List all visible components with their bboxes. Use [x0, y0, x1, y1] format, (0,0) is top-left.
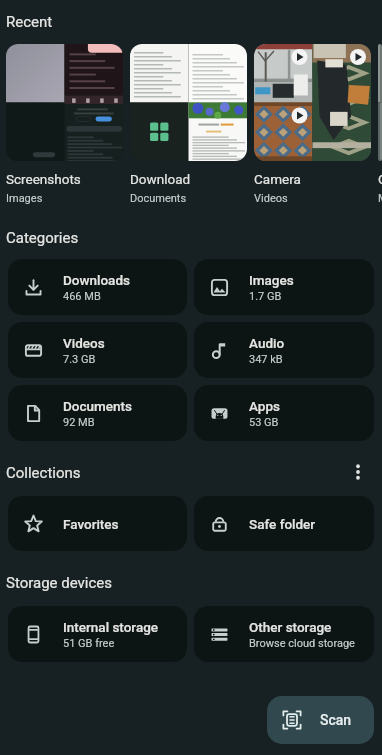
button[interactable]: Other — [378, 44, 382, 205]
staticText: Collections — [6, 464, 81, 482]
staticText: Apps — [249, 398, 280, 414]
button[interactable]: Camera — [254, 44, 371, 205]
staticText: Downloads — [63, 272, 130, 288]
staticText: Other — [378, 171, 382, 187]
staticText: Storage devices — [6, 574, 113, 592]
button[interactable]: Apps — [194, 385, 374, 441]
button[interactable]: Screenshots — [6, 44, 123, 205]
button[interactable]: More options — [344, 458, 372, 486]
staticText: Other storage — [249, 619, 332, 635]
staticText: Images — [6, 192, 43, 205]
staticText: 1.7 GB — [249, 290, 282, 303]
button[interactable]: Images — [194, 259, 374, 315]
staticText: 7.3 GB — [63, 353, 96, 366]
staticText: 466 MB — [63, 290, 101, 303]
button[interactable]: Documents — [8, 385, 187, 441]
staticText: Safe folder — [249, 516, 316, 532]
staticText: Scan — [320, 712, 352, 728]
staticText: Internal storage — [63, 619, 159, 635]
staticText: 347 kB — [249, 353, 283, 366]
staticText: 53 GB — [249, 416, 279, 429]
button[interactable]: Internal storage — [8, 606, 187, 662]
staticText: Audio — [249, 335, 285, 351]
staticText: Download — [130, 171, 191, 187]
staticText: Documents — [63, 398, 132, 414]
button[interactable]: Downloads — [8, 259, 187, 315]
staticText: Videos — [63, 335, 105, 351]
staticText: Favorites — [63, 516, 119, 532]
button[interactable]: Favorites — [8, 496, 187, 551]
button[interactable]: Download — [130, 44, 247, 205]
button[interactable]: Safe folder — [194, 496, 374, 551]
staticText: Videos — [254, 192, 288, 205]
staticText: Documents — [130, 192, 187, 205]
staticText: Screenshots — [6, 171, 81, 187]
button[interactable]: Videos — [8, 322, 187, 378]
staticText: Camera — [254, 171, 301, 187]
button[interactable]: Audio — [194, 322, 374, 378]
staticText: Recent — [6, 13, 53, 31]
staticText: Categories — [6, 229, 79, 247]
staticText: 51 GB free — [63, 637, 115, 650]
staticText: Images — [249, 272, 294, 288]
staticText: Mixed — [378, 192, 382, 205]
staticText: 92 MB — [63, 416, 95, 429]
staticText: Browse cloud storage — [249, 637, 355, 650]
button[interactable]: Scan — [267, 696, 374, 744]
button[interactable]: Other storage — [194, 606, 374, 662]
